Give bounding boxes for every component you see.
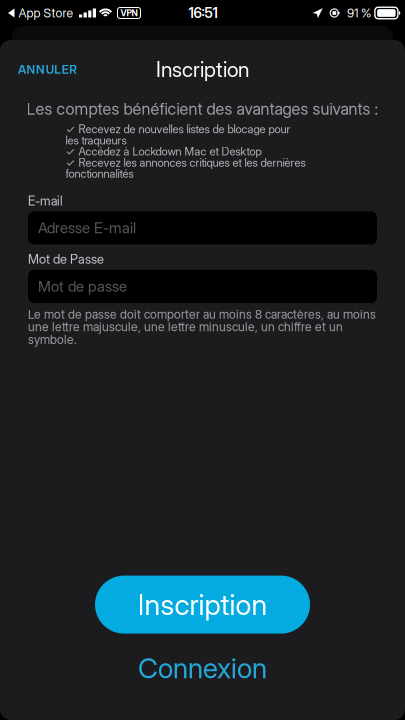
staticText: App Store xyxy=(18,6,73,20)
button[interactable]: Inscription xyxy=(95,576,310,634)
staticText: 16:51 xyxy=(188,4,217,21)
staticText: Inscription xyxy=(137,587,267,622)
staticText: ✓ Recevez les annonces critiques et les … xyxy=(65,157,305,179)
staticText: Adresse E-mail xyxy=(38,219,136,237)
staticText: VPN xyxy=(120,8,137,18)
staticText: Le mot de passe doit comporter au moins … xyxy=(28,308,376,346)
staticText: ANNULER xyxy=(18,62,77,77)
staticText: ✓ Recevez de nouvelles listes de blocage… xyxy=(65,124,290,146)
staticText: Connexion xyxy=(138,652,267,685)
button[interactable]: ANNULER xyxy=(13,55,82,84)
staticText: Inscription xyxy=(156,57,249,82)
button[interactable]: Connexion xyxy=(126,647,279,690)
staticText: Les comptes bénéficient des avantages su… xyxy=(26,99,378,119)
staticText: ✓ Accédez à Lockdown Mac et Desktop xyxy=(65,146,261,157)
staticText: E-mail xyxy=(28,193,63,208)
staticText: Mot de passe xyxy=(38,277,127,295)
staticText: 91 % xyxy=(347,6,371,20)
staticText: Mot de Passe xyxy=(28,251,104,267)
